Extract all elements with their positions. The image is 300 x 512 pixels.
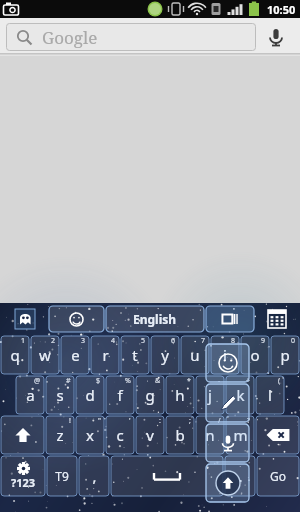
staticText: t [132, 345, 138, 365]
button[interactable]: s [46, 376, 74, 414]
staticText: i [223, 345, 227, 365]
staticText: ; [189, 416, 191, 426]
button[interactable]: Emoji [206, 344, 249, 382]
staticText: q [10, 345, 20, 365]
staticText: s [56, 385, 64, 405]
staticText: $ [96, 376, 101, 386]
button[interactable]: q [1, 336, 29, 374]
staticText: c [116, 425, 124, 445]
button[interactable]: x [76, 416, 104, 454]
button[interactable]: d [76, 376, 104, 414]
staticText: d [85, 385, 95, 405]
button[interactable]: . [225, 456, 255, 496]
staticText: z [56, 425, 64, 445]
staticText: Go [270, 468, 286, 484]
staticText: ?123 [11, 475, 36, 490]
button[interactable]: g [136, 376, 164, 414]
staticText: m [233, 425, 248, 445]
staticText: 5 [141, 336, 146, 346]
staticText: j [208, 385, 212, 405]
staticText: 8 [231, 336, 236, 346]
staticText: @ [34, 376, 41, 386]
staticText: / [218, 416, 221, 426]
button[interactable]: u [181, 336, 209, 374]
staticText: y [161, 345, 169, 365]
button[interactable]: Shift [1, 416, 44, 454]
staticText: 9 [261, 336, 266, 346]
button[interactable]: Voice input [206, 424, 249, 462]
staticText: # [66, 376, 71, 386]
staticText: 7 [201, 336, 206, 346]
staticText: 1 [21, 336, 26, 346]
staticText: + [246, 376, 251, 386]
button[interactable]: Google [6, 23, 256, 51]
button[interactable]: i [211, 336, 239, 374]
staticText: ? [247, 416, 251, 426]
button[interactable]: b [166, 416, 194, 454]
staticText: b [175, 425, 185, 445]
button[interactable]: Settings [206, 464, 249, 502]
button[interactable]: Go [257, 456, 299, 496]
button[interactable]: m [226, 416, 254, 454]
button[interactable]: y [151, 336, 179, 374]
staticText: 0 [291, 336, 296, 346]
staticText: 6 [171, 336, 176, 346]
button[interactable]: Layout [206, 306, 254, 332]
button[interactable]: o [241, 336, 269, 374]
button[interactable]: f [106, 376, 134, 414]
button[interactable]: a [16, 376, 44, 414]
staticText: n [205, 425, 215, 445]
staticText: 10:50 [267, 2, 296, 17]
staticText: % [125, 376, 131, 386]
staticText: * [187, 376, 191, 386]
button[interactable]: z [46, 416, 74, 454]
button[interactable]: w [31, 336, 59, 374]
staticText: x [86, 425, 94, 445]
button[interactable]: c [106, 416, 134, 454]
button[interactable]: h [166, 376, 194, 414]
button[interactable]: e [61, 336, 89, 374]
button[interactable]: k [226, 376, 254, 414]
button[interactable]: Symbols [1, 456, 45, 496]
staticText: Google [42, 26, 98, 49]
staticText: e [71, 345, 80, 365]
staticText: ' [129, 416, 131, 426]
staticText: ! [69, 416, 71, 426]
staticText: , [92, 466, 97, 486]
button[interactable]: English [106, 306, 204, 332]
staticText: 3 [81, 336, 86, 346]
button[interactable]: v [136, 416, 164, 454]
staticText: v [146, 425, 154, 445]
staticText: o [250, 345, 260, 365]
staticText: a [26, 385, 35, 405]
button[interactable]: Keypad [257, 306, 297, 332]
staticText: . [238, 466, 243, 486]
staticText: p [280, 345, 290, 365]
staticText: r [102, 345, 109, 365]
staticText: k [236, 385, 245, 405]
button[interactable]: j [196, 376, 224, 414]
staticText: T9 [55, 468, 69, 484]
button[interactable]: Theme [3, 306, 47, 332]
staticText: l [268, 385, 272, 405]
staticText: English [133, 311, 177, 327]
button[interactable]: p [271, 336, 299, 374]
staticText: f [117, 385, 123, 405]
button[interactable]: Draw [206, 384, 249, 422]
button[interactable]: Emoji [49, 306, 104, 332]
button[interactable]: Backspace [256, 416, 299, 454]
button[interactable]: l [256, 376, 284, 414]
staticText: 4 [111, 336, 116, 346]
button[interactable]: n [196, 416, 224, 454]
button[interactable]: Voice search [256, 23, 296, 51]
staticText: h [175, 385, 185, 405]
staticText: & [155, 376, 161, 386]
button[interactable]: T9 [47, 456, 77, 496]
staticText: : [159, 416, 161, 426]
button[interactable]: r [91, 336, 119, 374]
button[interactable]: t [121, 336, 149, 374]
button[interactable]: Space [111, 456, 223, 496]
staticText: - [218, 376, 221, 386]
staticText: u [190, 345, 200, 365]
button[interactable]: , [79, 456, 109, 496]
